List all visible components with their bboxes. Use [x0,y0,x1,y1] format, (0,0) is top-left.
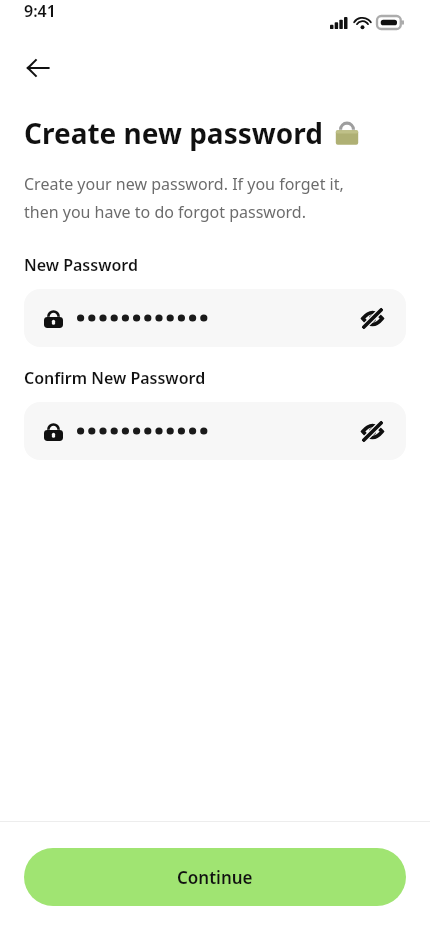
staticText: Continue [177,866,253,889]
button[interactable]: Show password [358,304,386,332]
button[interactable]: Show password [358,417,386,445]
button[interactable]: Show password [24,402,406,460]
staticText: Create new password [24,114,323,152]
staticText: Confirm New Password [24,367,206,389]
button[interactable]: Back [14,44,62,92]
button[interactable]: Continue [24,848,406,906]
staticText: 9:41 [24,0,56,22]
staticText: Create your new password. If you forget … [24,173,344,223]
button[interactable]: Show password [24,289,406,347]
staticText: New Password [24,254,138,276]
